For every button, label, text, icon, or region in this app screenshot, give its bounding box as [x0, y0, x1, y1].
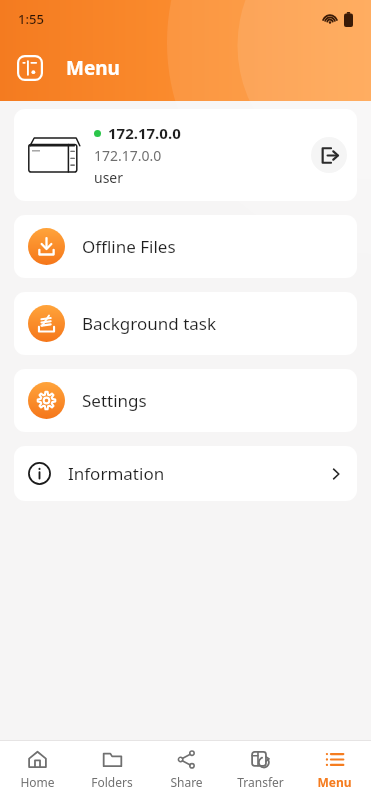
staticText: Information [68, 462, 165, 485]
staticText: Menu [317, 774, 352, 790]
staticText: Offline Files [82, 235, 176, 258]
button[interactable]: Share [149, 741, 223, 800]
button[interactable]: Information [14, 446, 357, 501]
staticText: Transfer [237, 774, 284, 790]
button[interactable]: Transfer [223, 741, 297, 800]
button[interactable]: App logo [14, 52, 46, 84]
button[interactable]: Settings [14, 369, 357, 432]
staticText: Menu [66, 55, 120, 81]
staticText: 172.17.0.0 [108, 123, 181, 143]
staticText: Share [170, 774, 203, 790]
button[interactable]: Menu [297, 741, 371, 800]
staticText: 1:55 [18, 10, 44, 28]
button[interactable]: Folders [75, 741, 149, 800]
button[interactable]: Home [0, 741, 75, 800]
staticText: Background task [82, 312, 217, 335]
staticText: Home [20, 774, 55, 790]
button[interactable]: Background task [14, 292, 357, 355]
staticText: user [94, 168, 124, 187]
button[interactable]: Offline Files [14, 215, 357, 278]
button[interactable]: 172.17.0.0 [14, 109, 357, 201]
staticText: Folders [91, 774, 133, 790]
staticText: 172.17.0.0 [94, 146, 162, 165]
staticText: Settings [82, 389, 147, 412]
button[interactable]: Log out [311, 137, 347, 173]
